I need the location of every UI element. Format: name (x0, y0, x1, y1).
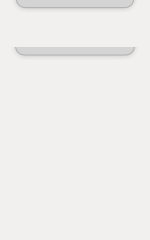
button[interactable]: Card 2 (0, 47, 150, 60)
button[interactable]: Card 1 (0, 0, 150, 13)
